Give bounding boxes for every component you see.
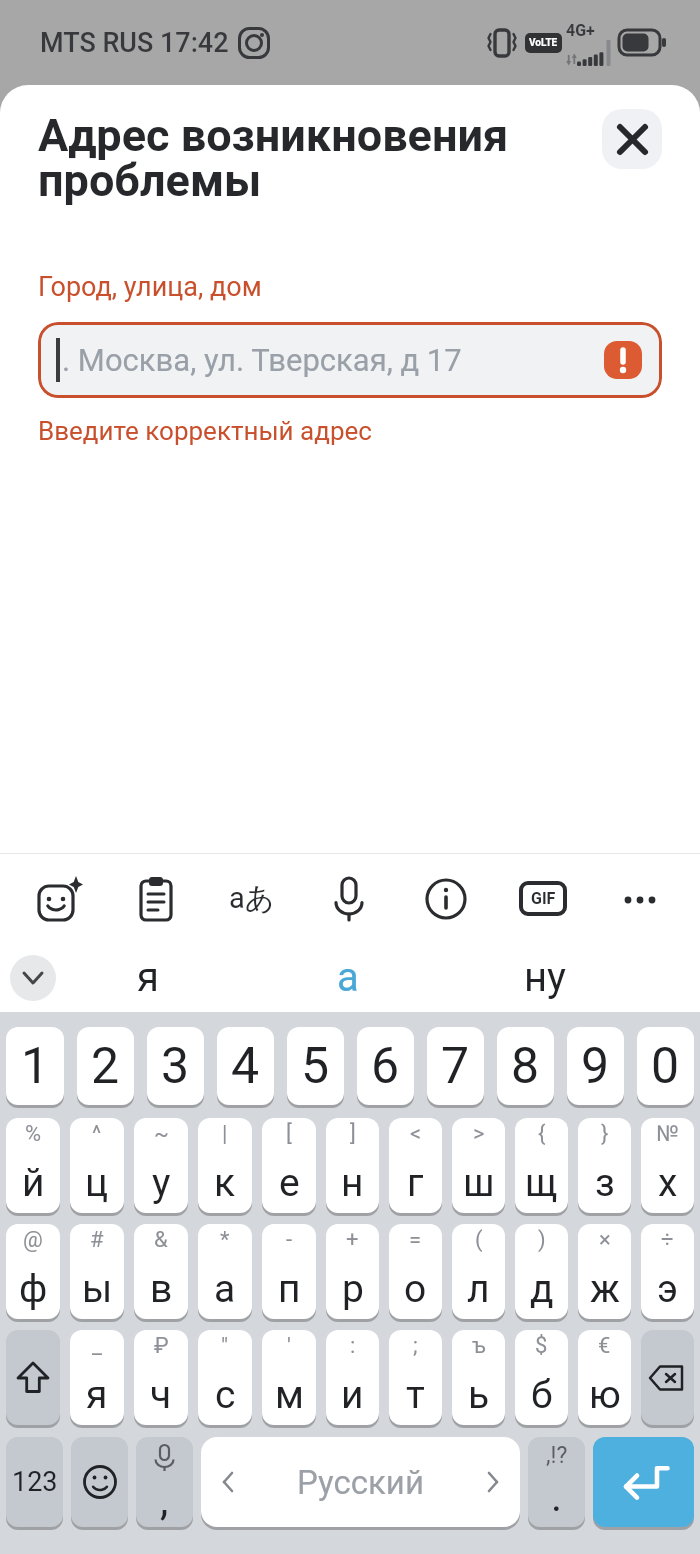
button[interactable] [6,1330,60,1425]
staticText: { [538,1121,546,1147]
button[interactable]: % [6,1118,60,1213]
staticText: ) [538,1227,546,1253]
button[interactable]: GIF [494,854,591,943]
button[interactable]: . Москва, ул. Тверская, д 17 [38,322,662,398]
staticText: - [286,1227,293,1253]
staticText: _ [92,1333,102,1359]
staticText: 4 [231,1037,260,1096]
staticText: & [154,1227,168,1253]
staticText: Введите корректный адрес [38,416,372,446]
button[interactable]: * [198,1224,252,1319]
button[interactable] [71,1437,128,1527]
button[interactable]: | [198,1118,252,1213]
button[interactable]: [ [262,1118,316,1213]
staticText: @ [23,1227,43,1253]
button[interactable]: ₽ [134,1330,188,1425]
button[interactable]: @ [6,1224,60,1319]
staticText: р [342,1266,364,1312]
button[interactable]: ' [262,1330,316,1425]
staticText: [ [286,1121,292,1147]
button[interactable] [108,854,204,943]
button[interactable]: Русский [201,1437,520,1527]
button[interactable]: 6 [357,1027,414,1105]
button[interactable]: 9 [567,1027,624,1105]
button[interactable]: 7 [427,1027,484,1105]
staticText: . Москва, ул. Тверская, д 17 [62,342,462,378]
staticText: ; [413,1333,418,1359]
button[interactable]: + [326,1224,379,1319]
button[interactable]: $ [515,1330,568,1425]
button[interactable] [10,955,56,1001]
staticText: б [531,1372,553,1418]
button[interactable]: 5 [287,1027,344,1105]
button[interactable]: , [136,1437,193,1527]
button[interactable]: ^ [70,1118,124,1213]
staticText: а [337,954,359,1001]
button[interactable]: 0 [637,1027,694,1105]
staticText: € [598,1333,611,1359]
button[interactable]: = [389,1224,442,1319]
staticText: Город, улица, дом [38,271,262,303]
button[interactable]: > [452,1118,505,1213]
button[interactable]: 1 [6,1027,64,1105]
button[interactable]: 4 [217,1027,274,1105]
button[interactable]: & [134,1224,188,1319]
staticText: Адрес возникновения проблемы [38,109,602,207]
button[interactable]: ÷ [641,1224,694,1319]
staticText: 7 [441,1037,470,1096]
button[interactable]: : [326,1330,379,1425]
button[interactable] [300,854,397,943]
staticText: э [657,1266,678,1312]
button[interactable]: _ [70,1330,124,1425]
staticText: я [86,1372,108,1418]
button[interactable]: ( [452,1224,505,1319]
button[interactable]: ,!? [528,1437,585,1527]
staticText: щ [525,1160,558,1206]
button[interactable] [602,109,662,169]
button[interactable]: ) [515,1224,568,1319]
staticText: и [341,1372,364,1418]
button[interactable]: - [262,1224,316,1319]
button[interactable]: ъ [452,1330,505,1425]
staticText: ф [19,1266,48,1312]
staticText: > [473,1121,485,1147]
button[interactable] [397,854,494,943]
button[interactable]: € [578,1330,631,1425]
staticText: ю [589,1372,621,1418]
button[interactable]: ; [389,1330,442,1425]
button[interactable]: а [288,943,408,1012]
button[interactable] [12,854,108,943]
staticText: л [467,1266,490,1312]
button[interactable] [591,854,688,943]
staticText: aあ [229,880,275,917]
staticText: г [407,1160,424,1206]
button[interactable] [641,1330,694,1425]
button[interactable]: < [389,1118,442,1213]
button[interactable]: aあ [204,854,300,943]
staticText: ц [85,1160,109,1206]
button[interactable]: # [70,1224,124,1319]
staticText: № [656,1121,679,1147]
button[interactable]: 123 [6,1437,63,1527]
button[interactable]: № [641,1118,694,1213]
button[interactable]: 2 [77,1027,134,1105]
button[interactable]: ~ [134,1118,188,1213]
button[interactable] [593,1437,694,1527]
button[interactable]: { [515,1118,568,1213]
staticText: 0 [651,1037,680,1096]
staticText: з [595,1160,615,1206]
staticText: ^ [92,1121,102,1147]
staticText: ы [82,1266,113,1312]
button[interactable]: я [88,943,208,1012]
staticText: 8 [511,1037,540,1096]
button[interactable]: ] [326,1118,379,1213]
button[interactable]: 8 [497,1027,554,1105]
staticText: 3 [161,1037,190,1096]
button[interactable]: " [198,1330,252,1425]
button[interactable]: ну [485,943,605,1012]
staticText: 4G+ [566,21,595,40]
button[interactable]: × [578,1224,631,1319]
button[interactable]: } [578,1118,631,1213]
staticText: ,!? [546,1442,568,1469]
button[interactable]: 3 [147,1027,204,1105]
